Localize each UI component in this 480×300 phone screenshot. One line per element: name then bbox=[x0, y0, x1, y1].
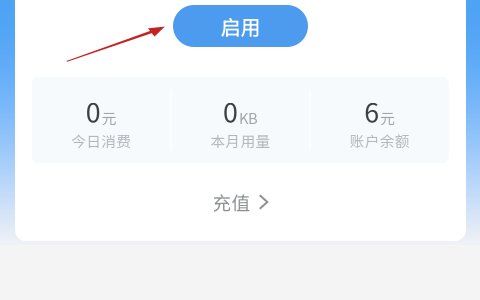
staticText: KB bbox=[239, 107, 258, 128]
staticText: 0 bbox=[86, 92, 101, 130]
staticText: 充值 bbox=[212, 188, 250, 215]
staticText: 本月用量 bbox=[210, 130, 270, 151]
button[interactable]: 充值 bbox=[15, 179, 466, 225]
button[interactable]: 启用 bbox=[173, 5, 308, 47]
staticText: 0 bbox=[223, 92, 238, 130]
staticText: 元 bbox=[380, 107, 395, 128]
staticText: 元 bbox=[102, 107, 117, 128]
staticText: 今日消费 bbox=[71, 130, 131, 151]
staticText: 启用 bbox=[220, 11, 260, 40]
staticText: 账户余额 bbox=[350, 130, 410, 151]
staticText: 6 bbox=[364, 92, 379, 130]
